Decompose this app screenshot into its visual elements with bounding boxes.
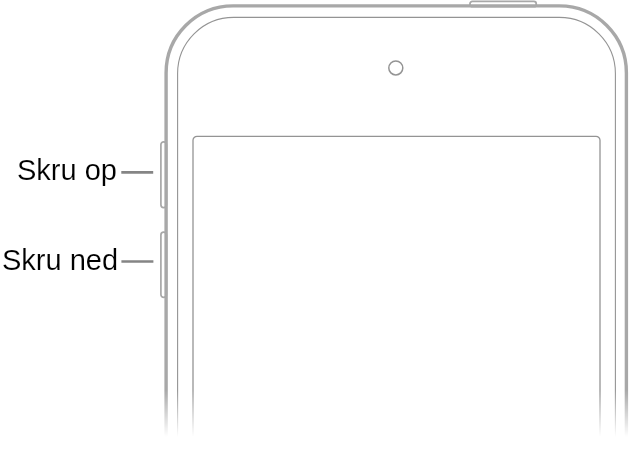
button[interactable]: Skru op xyxy=(2,155,170,210)
button[interactable]: Skru ned xyxy=(2,245,170,300)
button[interactable]: Sidetast xyxy=(468,0,538,10)
